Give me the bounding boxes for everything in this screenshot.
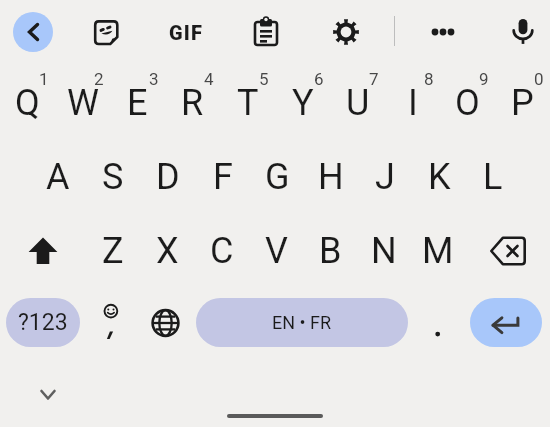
button[interactable]: L <box>466 151 520 203</box>
staticText: C <box>210 230 234 272</box>
button[interactable]: X <box>140 225 195 277</box>
button[interactable]: A <box>30 151 85 203</box>
button[interactable]: Y <box>275 68 330 128</box>
button[interactable]: J <box>358 151 412 203</box>
staticText: U <box>346 82 370 124</box>
button[interactable]: F <box>195 151 250 203</box>
staticText: 4 <box>204 69 214 89</box>
staticText: R <box>181 82 204 124</box>
button[interactable]: T <box>220 68 275 128</box>
button[interactable]: Emoji <box>88 298 136 347</box>
button[interactable]: U <box>330 68 385 128</box>
staticText: 1 <box>39 69 49 89</box>
button[interactable]: Hide keyboard <box>30 377 66 413</box>
button[interactable]: Z <box>85 225 140 277</box>
staticText: O <box>455 82 480 124</box>
button[interactable]: EN • FR <box>196 298 408 347</box>
button[interactable]: More options <box>422 11 464 53</box>
button[interactable]: E <box>110 68 165 128</box>
staticText: GIF <box>169 21 204 44</box>
button[interactable]: Stickers <box>85 11 127 53</box>
button[interactable]: Period <box>418 298 458 347</box>
button[interactable]: W <box>55 68 110 128</box>
staticText: EN • FR <box>272 312 332 333</box>
staticText: M <box>422 230 454 272</box>
button[interactable]: Back <box>13 12 53 52</box>
staticText: P <box>511 82 534 124</box>
staticText: H <box>318 156 344 198</box>
button[interactable]: Clipboard <box>245 11 287 53</box>
button[interactable]: Enter <box>470 298 542 347</box>
staticText: E <box>127 82 148 124</box>
staticText: N <box>371 230 397 272</box>
button[interactable]: G <box>250 151 304 203</box>
button[interactable]: Voice input <box>502 10 544 52</box>
button[interactable]: Shift <box>0 225 85 277</box>
staticText: F <box>213 156 233 198</box>
staticText: 3 <box>149 69 159 89</box>
staticText: T <box>237 82 259 124</box>
staticText: G <box>265 156 290 198</box>
button[interactable]: C <box>195 225 249 277</box>
button[interactable]: P <box>495 68 550 128</box>
staticText: D <box>156 156 180 198</box>
button[interactable]: Change language <box>143 298 187 347</box>
staticText: Z <box>102 230 124 272</box>
button[interactable]: I <box>385 68 440 128</box>
button[interactable]: Settings <box>325 11 367 53</box>
staticText: 0 <box>534 69 544 89</box>
staticText: Y <box>292 82 314 124</box>
staticText: Q <box>15 82 40 124</box>
staticText: V <box>265 230 288 272</box>
staticText: S <box>102 156 124 198</box>
staticText: I <box>408 82 418 124</box>
staticText: 5 <box>259 69 269 89</box>
staticText: A <box>46 156 70 198</box>
button[interactable]: O <box>440 68 495 128</box>
staticText: J <box>375 156 395 198</box>
staticText: 2 <box>94 69 104 89</box>
button[interactable]: ?123 <box>6 298 80 347</box>
button[interactable]: D <box>140 151 195 203</box>
button[interactable]: B <box>303 225 357 277</box>
staticText: 7 <box>369 69 379 89</box>
staticText: K <box>428 156 451 198</box>
button[interactable]: V <box>249 225 303 277</box>
button[interactable]: GIF <box>165 11 207 53</box>
staticText: 6 <box>314 69 324 89</box>
button[interactable]: Q <box>0 68 55 128</box>
staticText: B <box>319 230 342 272</box>
button[interactable]: M <box>411 225 465 277</box>
button[interactable]: K <box>412 151 466 203</box>
button[interactable]: H <box>304 151 358 203</box>
button[interactable]: R <box>165 68 220 128</box>
button[interactable]: Backspace <box>465 225 550 277</box>
staticText: 8 <box>424 69 434 89</box>
button[interactable]: N <box>357 225 411 277</box>
staticText: ?123 <box>18 309 68 336</box>
staticText: W <box>67 82 99 124</box>
staticText: X <box>156 230 179 272</box>
staticText: 9 <box>479 69 489 89</box>
button[interactable]: S <box>85 151 140 203</box>
staticText: L <box>483 156 503 198</box>
